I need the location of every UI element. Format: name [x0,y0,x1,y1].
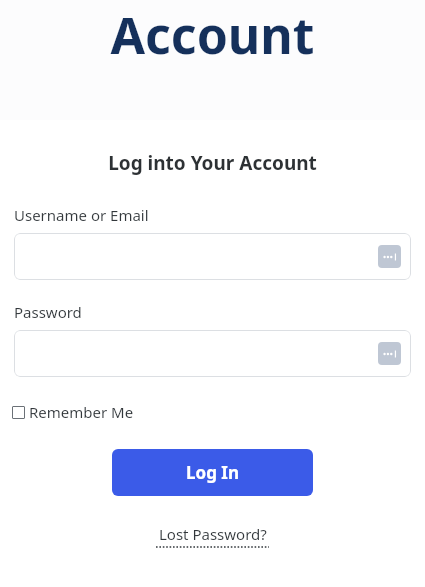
button[interactable]: Autofill password [14,233,411,280]
button[interactable]: Remember Me [12,400,142,424]
button[interactable]: Autofill password [378,245,401,268]
staticText: Remember Me [29,402,134,422]
button[interactable]: Log In [112,449,313,496]
button[interactable]: Autofill password [378,342,401,365]
button[interactable]: Lost Password? [156,524,269,548]
staticText: Lost Password? [159,524,267,544]
staticText: Log into Your Account [0,150,425,176]
staticText: Password [14,302,82,322]
staticText: Log In [186,461,239,484]
staticText: Username or Email [14,205,149,225]
staticText: Account [110,1,315,69]
button[interactable]: Autofill password [14,330,411,377]
